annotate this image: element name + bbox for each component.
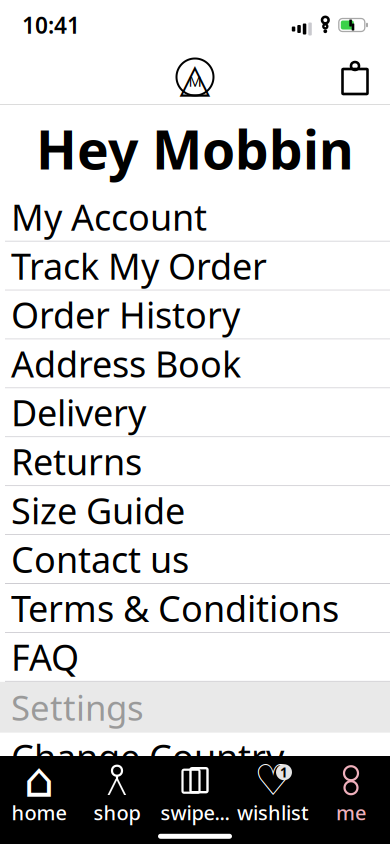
staticText: △ — [103, 767, 131, 808]
staticText: FAQ — [11, 633, 79, 681]
staticText: 1 — [280, 763, 288, 781]
staticText: 10:41 — [22, 10, 80, 40]
button[interactable]: Address Book — [0, 339, 390, 388]
button[interactable]: Size Guide — [0, 486, 390, 535]
button[interactable]: swipe... — [156, 764, 234, 826]
staticText: ♡ — [254, 756, 292, 804]
button[interactable]: ⌂ — [0, 764, 78, 826]
staticText: Terms & Conditions — [11, 584, 339, 632]
staticText: △ — [179, 55, 210, 101]
button[interactable]: me — [312, 764, 390, 826]
button[interactable]: Delivery — [0, 388, 390, 437]
staticText: Track My Order — [11, 242, 267, 290]
staticText: Address Book — [11, 340, 241, 387]
staticText: Order History — [11, 291, 240, 338]
staticText: Size Guide — [11, 486, 185, 534]
staticText: Delivery — [11, 388, 146, 436]
button[interactable]: Track My Order — [0, 242, 390, 291]
button[interactable]: Change Country — [0, 733, 390, 782]
button[interactable]: Contact us — [0, 535, 390, 584]
staticText: Hey Mobbin — [36, 113, 354, 184]
staticText: Settings — [11, 684, 144, 730]
staticText: me — [336, 799, 366, 826]
button[interactable]: ♡ — [234, 764, 312, 826]
button[interactable]: △ — [78, 764, 156, 826]
button[interactable]: Home — [171, 53, 219, 101]
button[interactable] — [0, 782, 390, 844]
staticText: M — [188, 71, 201, 91]
staticText: Contact us — [11, 535, 189, 583]
staticText: shop — [93, 799, 140, 826]
staticText: wishlist — [237, 799, 309, 826]
staticText: ⌂ — [24, 753, 54, 807]
button[interactable]: Order History — [0, 291, 390, 339]
button[interactable]: FAQ — [0, 633, 390, 682]
staticText: Change Country — [11, 733, 284, 781]
staticText: Returns — [11, 437, 142, 485]
button[interactable]: Shopping bag — [332, 54, 378, 100]
button[interactable]: Returns — [0, 437, 390, 486]
button[interactable]: Terms & Conditions — [0, 584, 390, 633]
staticText: home — [11, 799, 66, 826]
staticText: swipe... — [160, 799, 229, 826]
button[interactable]: My Account — [0, 193, 390, 242]
staticText: My Account — [11, 193, 207, 241]
